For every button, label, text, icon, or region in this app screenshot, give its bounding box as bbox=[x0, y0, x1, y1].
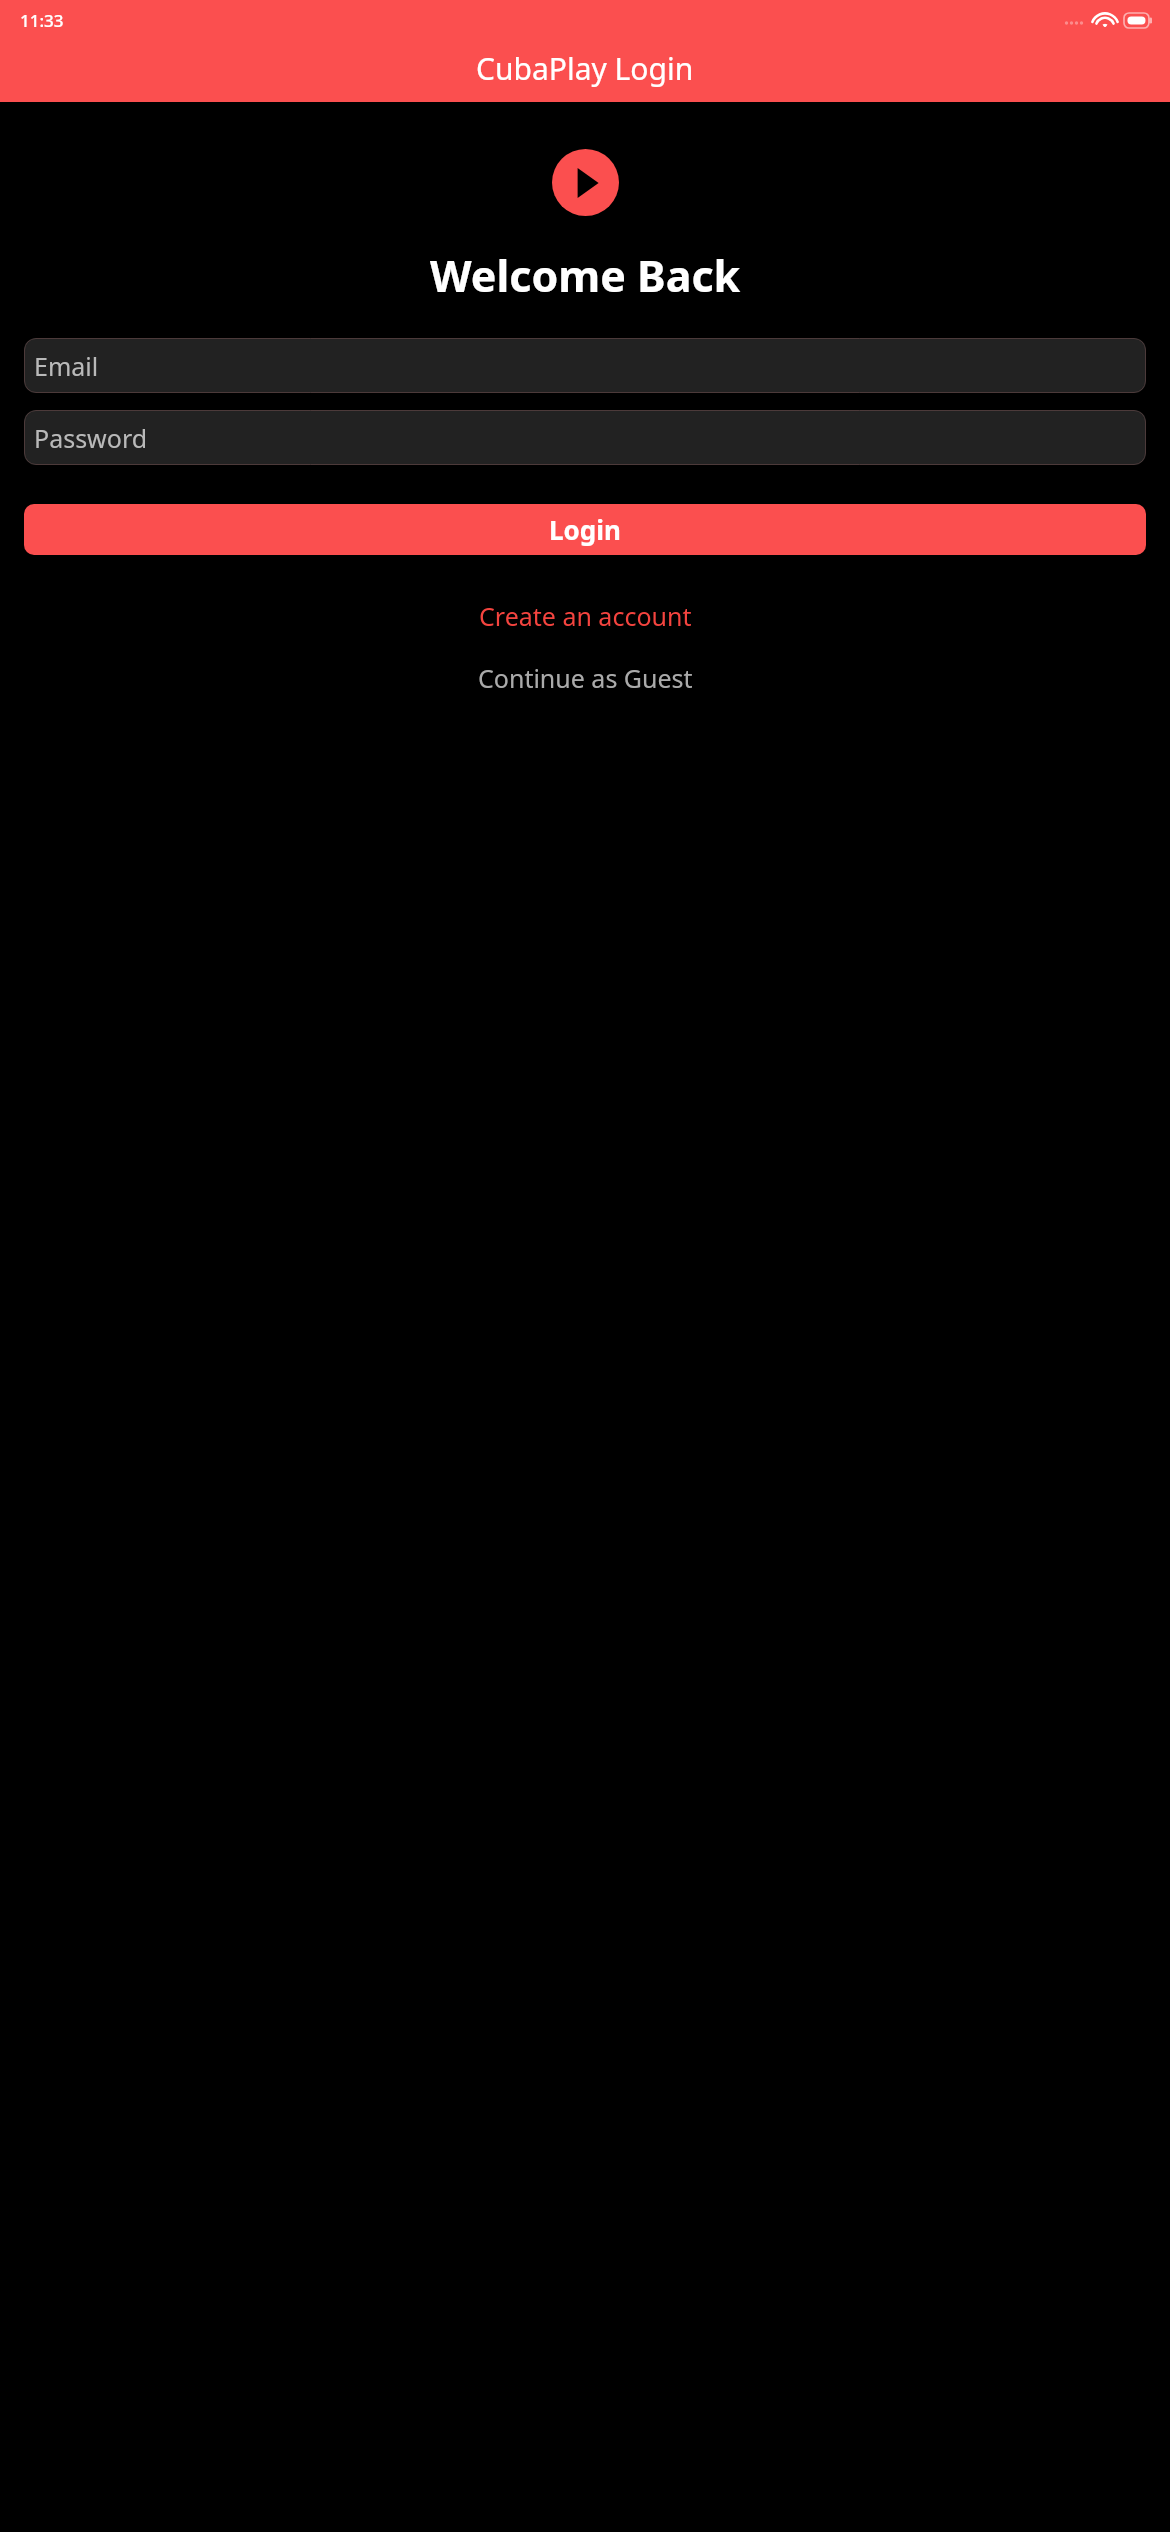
staticText: Login bbox=[549, 512, 621, 547]
button[interactable]: Create an account bbox=[0, 595, 1170, 637]
other: CubaPlay logo bbox=[552, 149, 619, 216]
staticText: CubaPlay Login bbox=[476, 48, 694, 89]
staticText: Email bbox=[34, 349, 99, 383]
staticText: Continue as Guest bbox=[478, 661, 693, 695]
button[interactable]: Continue as Guest bbox=[0, 657, 1170, 699]
button[interactable]: Email bbox=[24, 338, 1146, 393]
staticText: Create an account bbox=[479, 599, 692, 633]
button[interactable]: Login bbox=[24, 504, 1146, 555]
staticText: Password bbox=[34, 421, 148, 455]
button[interactable]: Password bbox=[24, 410, 1146, 465]
staticText: 11:33 bbox=[20, 9, 64, 32]
staticText: Welcome Back bbox=[430, 246, 741, 305]
